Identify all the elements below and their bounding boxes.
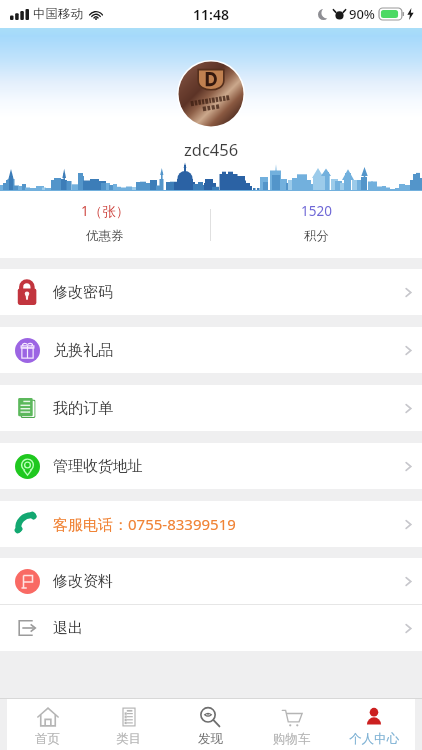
staticText: 购物车 (273, 731, 311, 747)
staticText: 客服电话：0755-83399519 (53, 514, 236, 534)
button[interactable]: 退出 (0, 605, 422, 651)
staticText: 发现 (198, 731, 223, 747)
staticText: 退出 (53, 619, 83, 638)
staticText: 1520 (301, 202, 332, 220)
button[interactable]: 个人中心 (333, 699, 415, 750)
staticText: 个人中心 (349, 731, 399, 747)
staticText: 兑换礼品 (53, 341, 113, 360)
button[interactable]: 1520 (211, 191, 422, 258)
staticText: zdc456 (184, 138, 239, 160)
staticText: 1（张） (81, 202, 130, 220)
button[interactable]: 首页 (7, 699, 88, 750)
staticText: 修改资料 (53, 572, 113, 591)
button[interactable]: 修改资料 (0, 558, 422, 604)
staticText: 修改密码 (53, 283, 113, 302)
staticText: 积分 (304, 228, 329, 244)
staticText: 类目 (116, 731, 141, 747)
staticText: 中国移动 (33, 6, 83, 22)
button[interactable]: 发现 (169, 699, 251, 750)
button[interactable]: 购物车 (251, 699, 333, 750)
button[interactable]: 类目 (88, 699, 169, 750)
button[interactable]: 客服电话：0755-83399519 (0, 501, 422, 547)
button[interactable]: 修改密码 (0, 269, 422, 315)
button[interactable]: 我的订单 (0, 385, 422, 431)
staticText: 首页 (35, 731, 60, 747)
staticText: 管理收货地址 (53, 457, 143, 476)
staticText: 优惠券 (86, 228, 124, 244)
staticText: 我的订单 (53, 399, 113, 418)
button[interactable]: 管理收货地址 (0, 443, 422, 489)
button[interactable]: 兑换礼品 (0, 327, 422, 373)
staticText: 11:48 (193, 5, 229, 24)
button[interactable]: 1（张） (0, 191, 210, 258)
staticText: 90% (349, 5, 375, 23)
